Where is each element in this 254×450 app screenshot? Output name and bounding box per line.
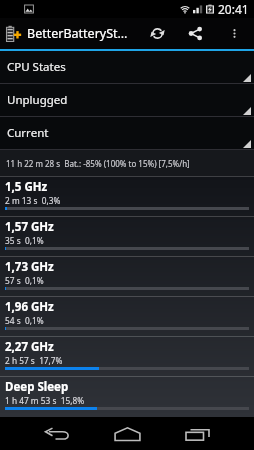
- button[interactable]: 2,27 GHz: [0, 336, 254, 376]
- staticText: 57 s 0,1%: [5, 275, 44, 286]
- button[interactable]: Share: [176, 18, 214, 49]
- staticText: 1,96 GHz: [5, 299, 54, 315]
- button[interactable]: 1,73 GHz: [0, 256, 254, 296]
- staticText: 2 h 57 s 17,7%: [5, 355, 63, 366]
- staticText: 1 h 47 m 53 s 15,8%: [5, 395, 85, 406]
- button[interactable]: Recents: [162, 417, 232, 450]
- button[interactable]: Deep Sleep: [0, 376, 254, 416]
- button[interactable]: Home: [92, 417, 162, 450]
- staticText: 2,27 GHz: [5, 339, 54, 355]
- button[interactable]: 1,96 GHz: [0, 296, 254, 336]
- staticText: CPU States: [7, 59, 66, 75]
- staticText: Current: [7, 125, 49, 141]
- staticText: 11 h 22 m 28 s Bat.: -85% (100% to 15%) …: [6, 158, 190, 169]
- button[interactable]: Refresh: [138, 18, 176, 49]
- staticText: BetterBatterySt…: [27, 25, 128, 42]
- button[interactable]: Back: [22, 417, 92, 450]
- staticText: Deep Sleep: [5, 379, 69, 395]
- staticText: Unplugged: [7, 92, 68, 108]
- staticText: 1,73 GHz: [5, 259, 54, 275]
- staticText: 35 s 0,1%: [5, 235, 44, 246]
- button[interactable]: Current: [0, 117, 254, 150]
- button[interactable]: 1,5 GHz: [0, 176, 254, 216]
- staticText: 2 m 13 s 0,3%: [5, 195, 61, 206]
- button[interactable]: More options: [214, 18, 254, 49]
- button[interactable]: 1,57 GHz: [0, 216, 254, 256]
- staticText: 20:41: [218, 1, 249, 17]
- staticText: 1,57 GHz: [5, 219, 54, 235]
- button[interactable]: Unplugged: [0, 84, 254, 117]
- staticText: 1,5 GHz: [5, 179, 48, 195]
- staticText: 54 s 0,1%: [5, 315, 44, 326]
- button[interactable]: CPU States: [0, 51, 254, 84]
